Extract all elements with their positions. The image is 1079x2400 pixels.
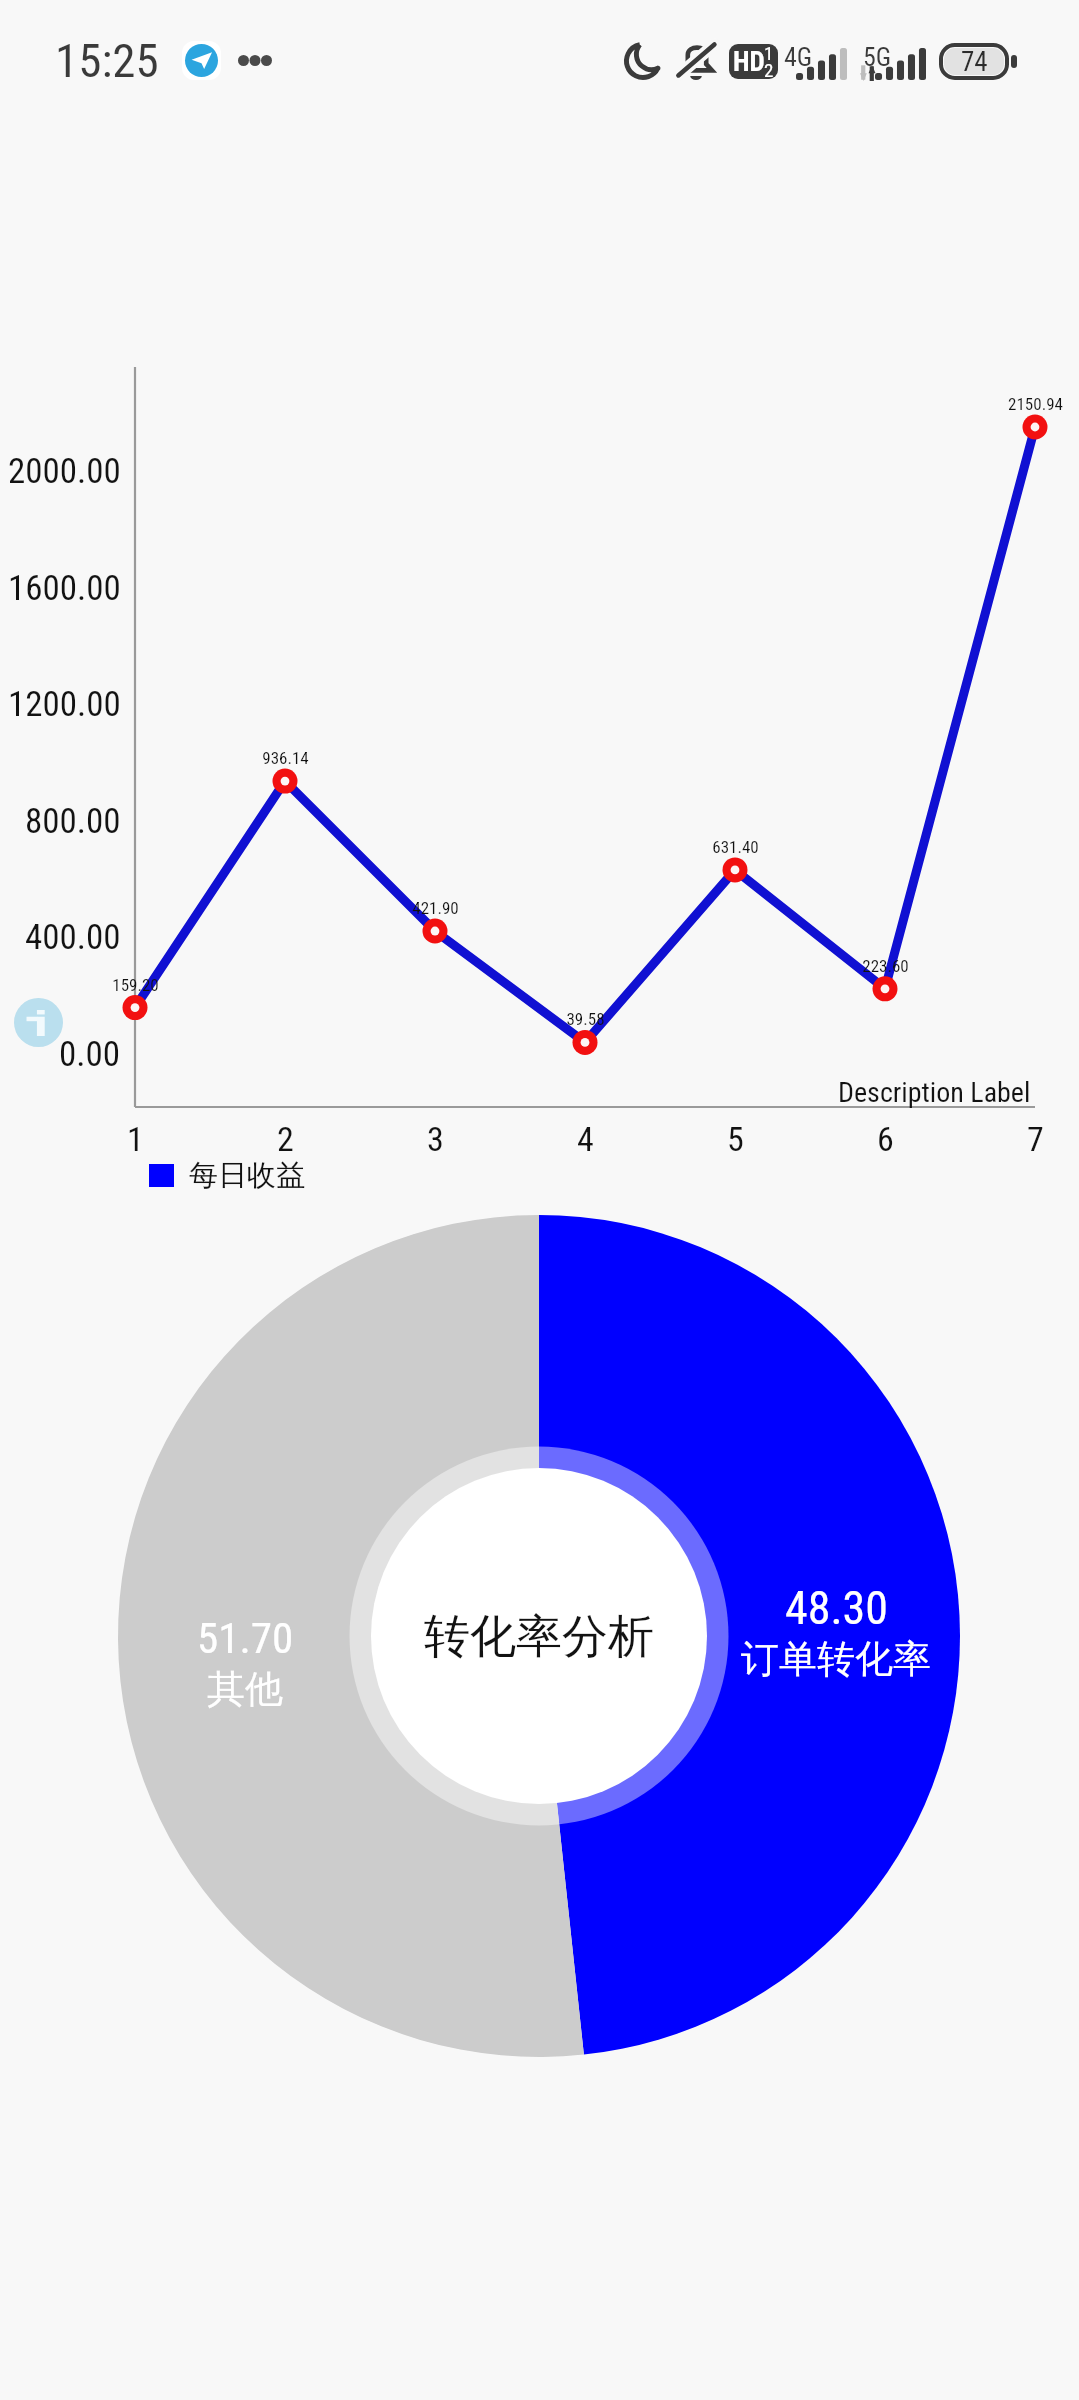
button[interactable]: Telegram — [182, 41, 221, 80]
staticText: 159.20 — [112, 975, 159, 995]
staticText: 7 — [1027, 1119, 1044, 1159]
staticText: 2 — [764, 59, 774, 81]
button[interactable]: 4G signal — [783, 42, 847, 80]
button[interactable]: 每日收益 — [149, 1157, 305, 1194]
staticText: 3 — [427, 1119, 444, 1159]
staticText: 订单转化率 — [741, 1635, 931, 1683]
staticText: 2000.00 — [8, 451, 121, 492]
staticText: 936.14 — [262, 748, 309, 768]
staticText: 5 — [727, 1119, 744, 1159]
staticText: 1600.00 — [8, 568, 121, 609]
button[interactable]: Daily revenue line chart — [0, 0, 1079, 1250]
staticText: 0.00 — [59, 1034, 121, 1075]
button[interactable]: Conversion rate pie chart — [0, 0, 1079, 2400]
staticText: 转化率分析 — [424, 1608, 654, 1666]
staticText: 74 — [961, 46, 988, 78]
staticText: 2150.94 — [1008, 394, 1063, 414]
staticText: 4G — [784, 42, 813, 72]
staticText: 6 — [877, 1119, 894, 1159]
button[interactable]: Do not disturb — [624, 42, 662, 80]
staticText: Description Label — [838, 1076, 1031, 1109]
button[interactable]: HD voice — [729, 44, 778, 79]
staticText: 15:25 — [55, 33, 159, 88]
staticText: 421.90 — [412, 898, 459, 918]
staticText: 4 — [577, 1119, 594, 1159]
button[interactable]: Mute — [676, 41, 716, 81]
staticText: 其他 — [207, 1665, 283, 1713]
staticText: 39.58 — [566, 1009, 605, 1029]
button[interactable]: More — [238, 55, 272, 66]
staticText: 1 — [127, 1119, 144, 1159]
staticText: HD — [733, 46, 765, 78]
staticText: 5G — [863, 42, 892, 72]
button[interactable]: Battery 74 percent — [941, 45, 1017, 78]
staticText: 400.00 — [25, 917, 121, 958]
staticText: 51.70 — [197, 1613, 294, 1663]
button[interactable]: Chart info — [14, 998, 63, 1047]
staticText: 每日收益 — [189, 1157, 305, 1194]
staticText: 1200.00 — [8, 684, 121, 725]
staticText: 223.60 — [862, 956, 909, 976]
staticText: 2 — [277, 1119, 294, 1159]
button[interactable]: 5G signal — [862, 42, 926, 80]
staticText: 800.00 — [25, 801, 121, 842]
staticText: 1 — [764, 42, 774, 64]
staticText: 48.30 — [785, 1581, 888, 1635]
staticText: 631.40 — [712, 837, 759, 857]
